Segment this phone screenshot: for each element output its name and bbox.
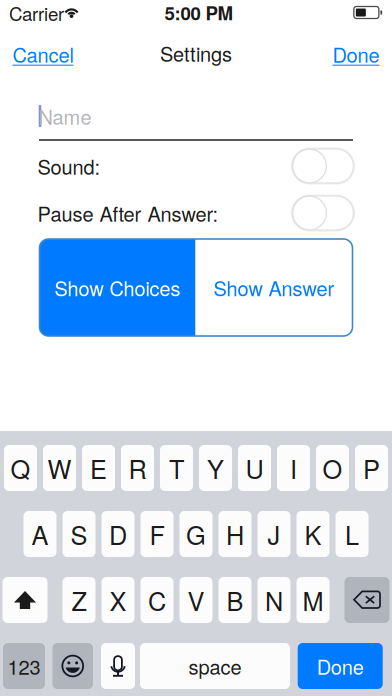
button[interactable]: B [218,577,251,623]
staticText: L [345,516,359,552]
button[interactable]: Show Choices [39,239,195,336]
staticText: G [186,516,206,552]
staticText: Pause After Answer: [37,199,218,227]
staticText: P [363,450,380,486]
button[interactable]: Show Answer [195,239,352,336]
staticText: Z [71,582,86,618]
button[interactable]: Done [298,643,383,689]
button[interactable]: X [101,577,134,623]
staticText: space [188,652,241,680]
button[interactable]: F [140,511,173,557]
staticText: Carrier [9,0,64,26]
staticText: U [245,450,263,486]
staticText: R [128,450,146,486]
button[interactable]: space [140,643,290,689]
staticText: V [187,582,204,618]
staticText: Sound: [37,152,100,180]
staticText: Q [10,450,30,486]
button[interactable]: V [179,577,212,623]
staticText: Done [317,652,364,680]
staticText: 5:00 PM [164,0,233,26]
button[interactable]: P [355,445,388,491]
staticText: Cancel [12,40,73,68]
button[interactable]: U [238,445,271,491]
staticText: I [290,450,297,486]
button[interactable]: Z [62,577,95,623]
button[interactable]: Toggle off [291,147,355,184]
staticText: N [265,582,283,618]
button[interactable]: C [140,577,173,623]
staticText: K [304,516,321,552]
button[interactable]: K [296,511,329,557]
staticText: B [226,582,243,618]
staticText: Settings [160,39,232,67]
button[interactable]: R [121,445,154,491]
button[interactable]: J [257,511,290,557]
staticText: Show Choices [54,273,180,302]
staticText: Show Answer [213,273,334,302]
staticText: W [47,450,71,486]
button[interactable]: Shift [2,577,47,623]
button[interactable]: G [179,511,212,557]
button[interactable]: N [257,577,290,623]
button[interactable]: M [296,577,329,623]
button[interactable]: E [82,445,115,491]
button[interactable]: L [335,511,368,557]
staticText: S [70,516,87,552]
button[interactable]: S [62,511,95,557]
staticText: J [267,516,280,552]
button[interactable]: Dictation [101,643,135,689]
button[interactable]: I [277,445,310,491]
button[interactable]: W [43,445,76,491]
button[interactable]: H [218,511,251,557]
staticText: D [109,516,127,552]
staticText: H [226,516,244,552]
button[interactable]: Delete [344,577,389,623]
button[interactable]: Y [199,445,232,491]
button[interactable]: Cancel [12,38,73,70]
staticText: O [322,450,342,486]
staticText: M [302,582,323,618]
button[interactable]: T [160,445,193,491]
staticText: E [90,450,107,486]
button[interactable]: Done [332,38,379,70]
staticText: 123 [7,652,40,680]
button[interactable]: Emoji [52,643,93,689]
button[interactable]: Toggle off [291,194,355,231]
staticText: Done [332,40,379,68]
button[interactable]: 123 [3,643,45,689]
staticText: Name [38,102,91,130]
staticText: A [31,516,48,552]
staticText: T [169,450,184,486]
button[interactable]: O [316,445,349,491]
button[interactable]: D [101,511,134,557]
staticText: Y [207,450,224,486]
staticText: X [109,582,126,618]
button[interactable]: Q [4,445,37,491]
staticText: C [148,582,166,618]
button[interactable]: A [23,511,56,557]
staticText: F [149,516,164,552]
